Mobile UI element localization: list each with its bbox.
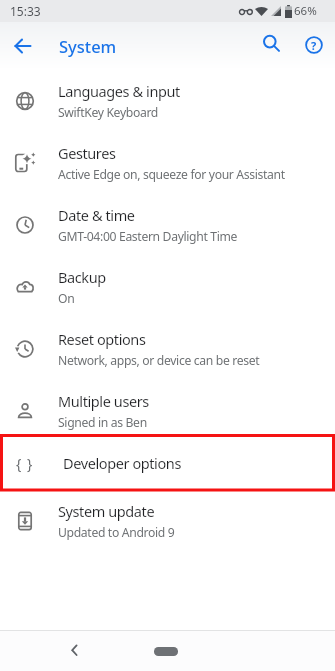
button[interactable]: Reset options: [0, 318, 335, 380]
staticText: On: [58, 290, 75, 307]
button[interactable]: Multiple users: [0, 380, 335, 442]
staticText: Languages & input: [58, 81, 180, 101]
staticText: System: [59, 35, 117, 57]
staticText: Updated to Android 9: [58, 524, 175, 541]
button[interactable]: [11, 34, 35, 58]
staticText: Backup: [58, 267, 106, 287]
staticText: 15:33: [10, 3, 41, 19]
button[interactable]: [260, 32, 284, 56]
button[interactable]: Date & time: [0, 194, 335, 256]
staticText: SwiftKey Keyboard: [58, 104, 158, 121]
staticText: Date & time: [58, 205, 135, 225]
staticText: 66%: [294, 3, 317, 19]
button[interactable]: [62, 638, 86, 662]
button[interactable]: { }: [0, 439, 335, 487]
button[interactable]: Backup: [0, 256, 335, 318]
button[interactable]: Languages & input: [0, 70, 335, 132]
button[interactable]: ?: [302, 33, 326, 57]
staticText: Active Edge on, squeeze for your Assista…: [58, 166, 285, 183]
staticText: Multiple users: [58, 391, 149, 411]
staticText: { }: [16, 454, 34, 473]
staticText: Signed in as Ben: [58, 414, 147, 431]
staticText: Network, apps, or device can be reset: [58, 352, 260, 369]
staticText: Gestures: [58, 143, 116, 163]
staticText: Developer options: [63, 453, 181, 473]
staticText: GMT-04:00 Eastern Daylight Time: [58, 228, 238, 245]
button[interactable]: Gestures: [0, 132, 335, 194]
staticText: System update: [58, 501, 155, 521]
staticText: ?: [311, 38, 317, 53]
button[interactable]: [154, 647, 178, 656]
button[interactable]: System update: [0, 490, 335, 552]
staticText: Reset options: [58, 329, 146, 349]
